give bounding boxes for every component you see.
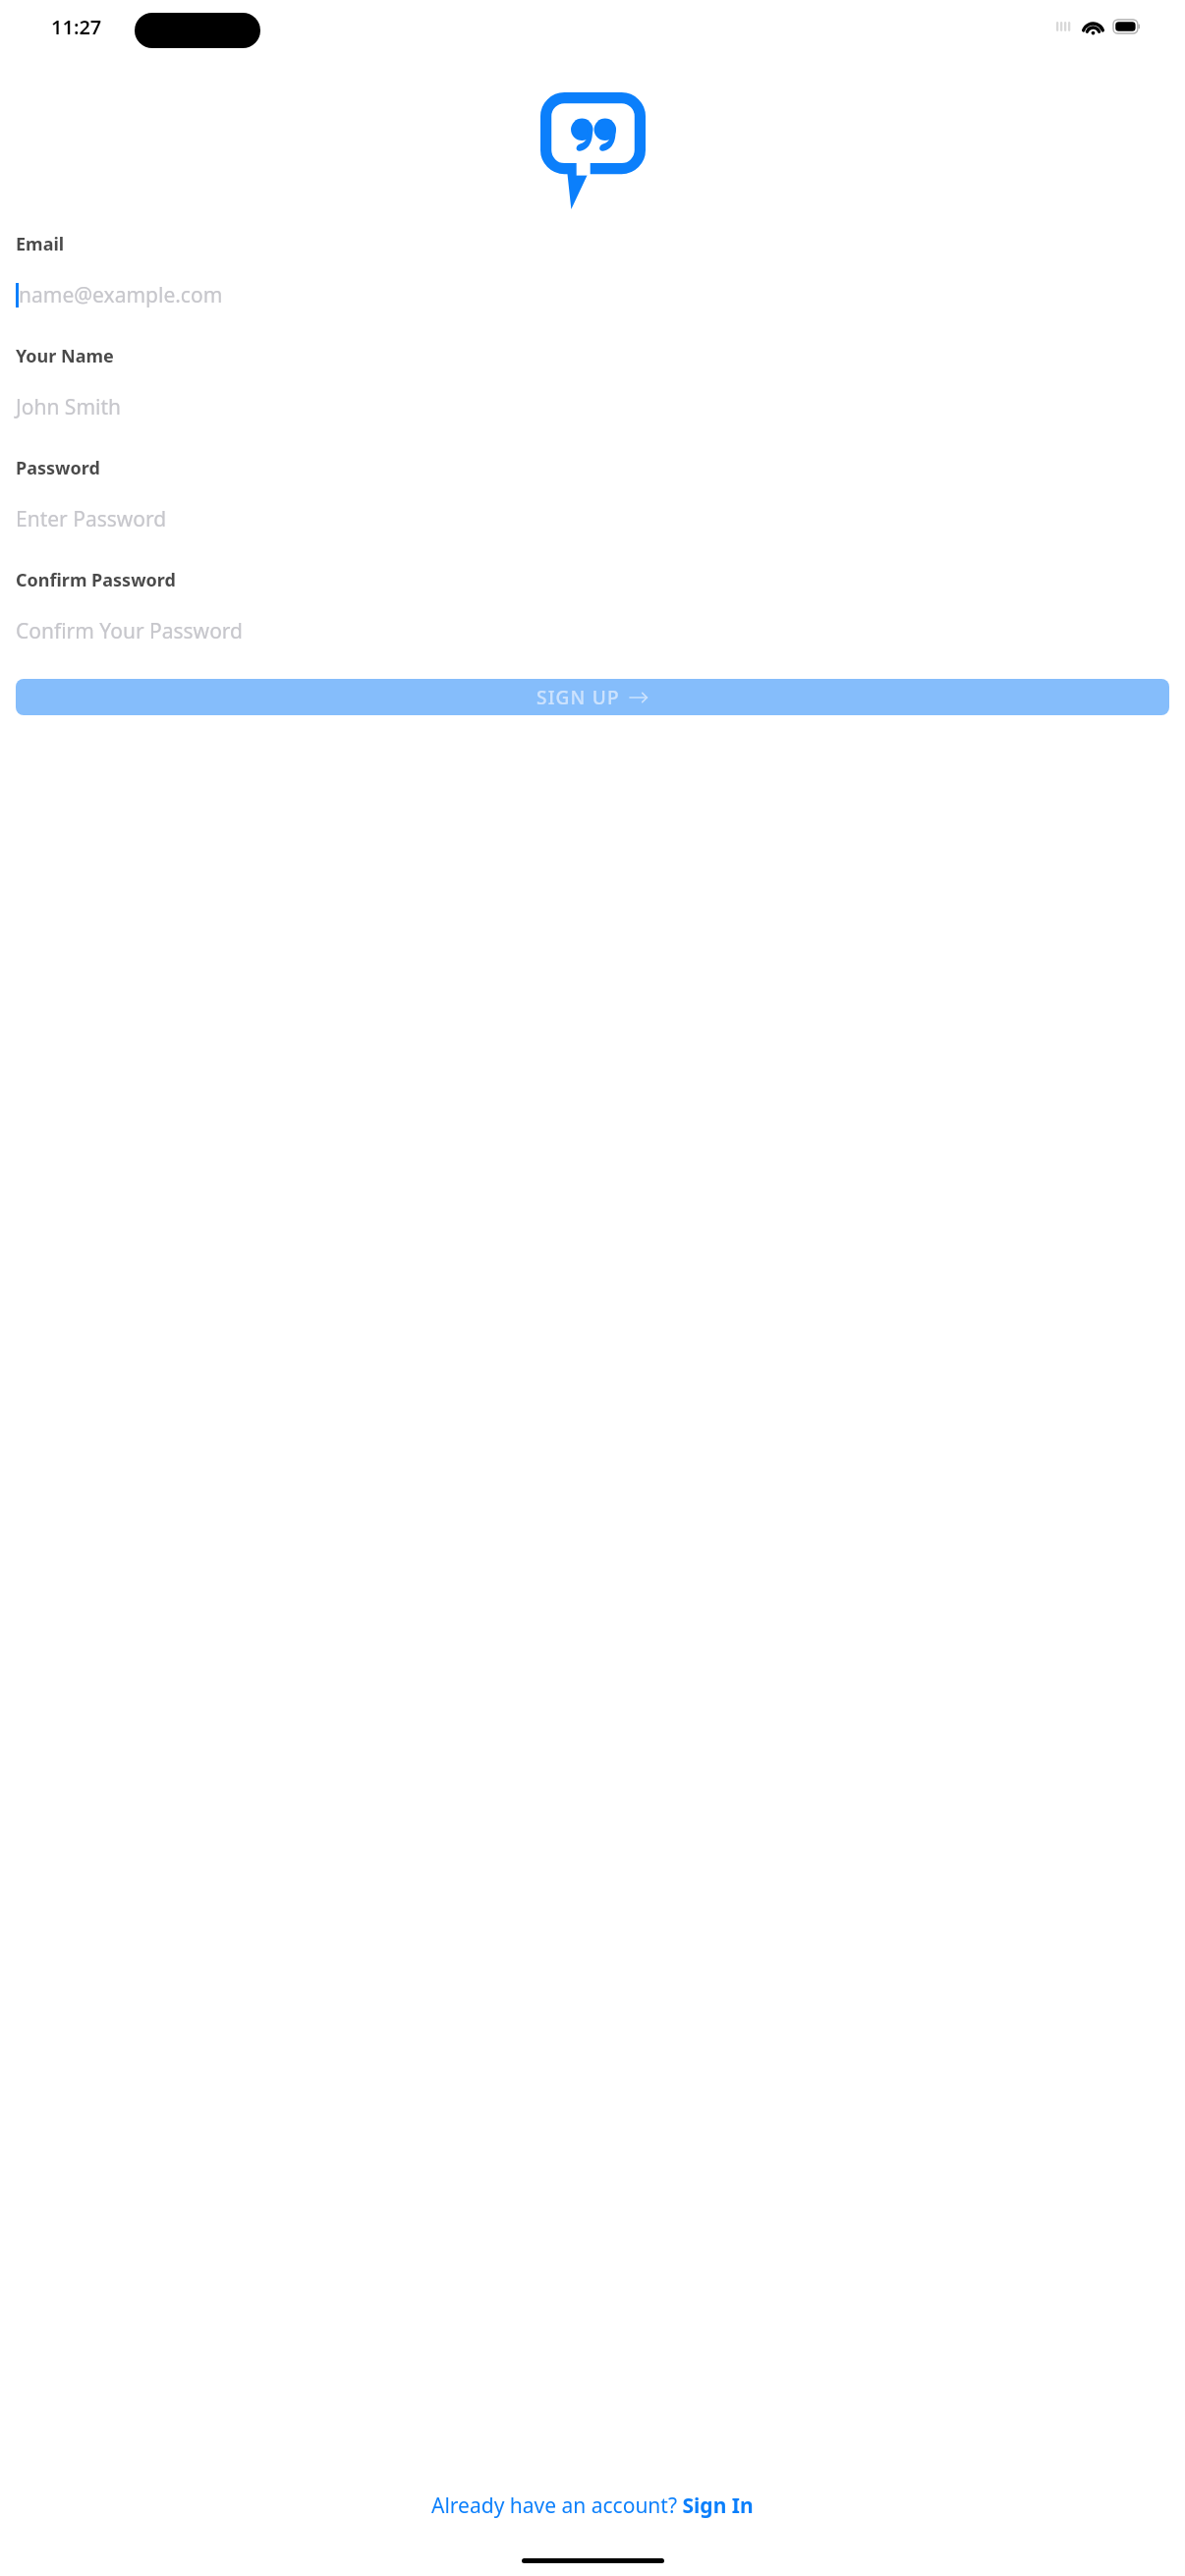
staticText: SIGN UP (536, 685, 620, 710)
staticText: name@example.com (19, 281, 223, 309)
staticText: Confirm Password (16, 568, 176, 592)
staticText: Password (16, 456, 100, 480)
button[interactable]: name@example.com (16, 280, 1169, 309)
button[interactable]: Confirm Your Password (16, 616, 1169, 645)
staticText: Email (16, 232, 65, 256)
staticText: John Smith (16, 393, 121, 421)
staticText: 11:27 (51, 14, 102, 40)
staticText: Your Name (16, 344, 114, 368)
button[interactable]: Enter Password (16, 504, 1169, 533)
button[interactable]: Already have an account? Sign In (423, 2486, 762, 2526)
button[interactable]: John Smith (16, 392, 1169, 421)
staticText: Already have an account? Sign In (431, 2492, 754, 2520)
staticText: Enter Password (16, 505, 167, 533)
staticText: Confirm Your Password (16, 617, 243, 645)
button[interactable]: SIGN UP (16, 679, 1169, 715)
